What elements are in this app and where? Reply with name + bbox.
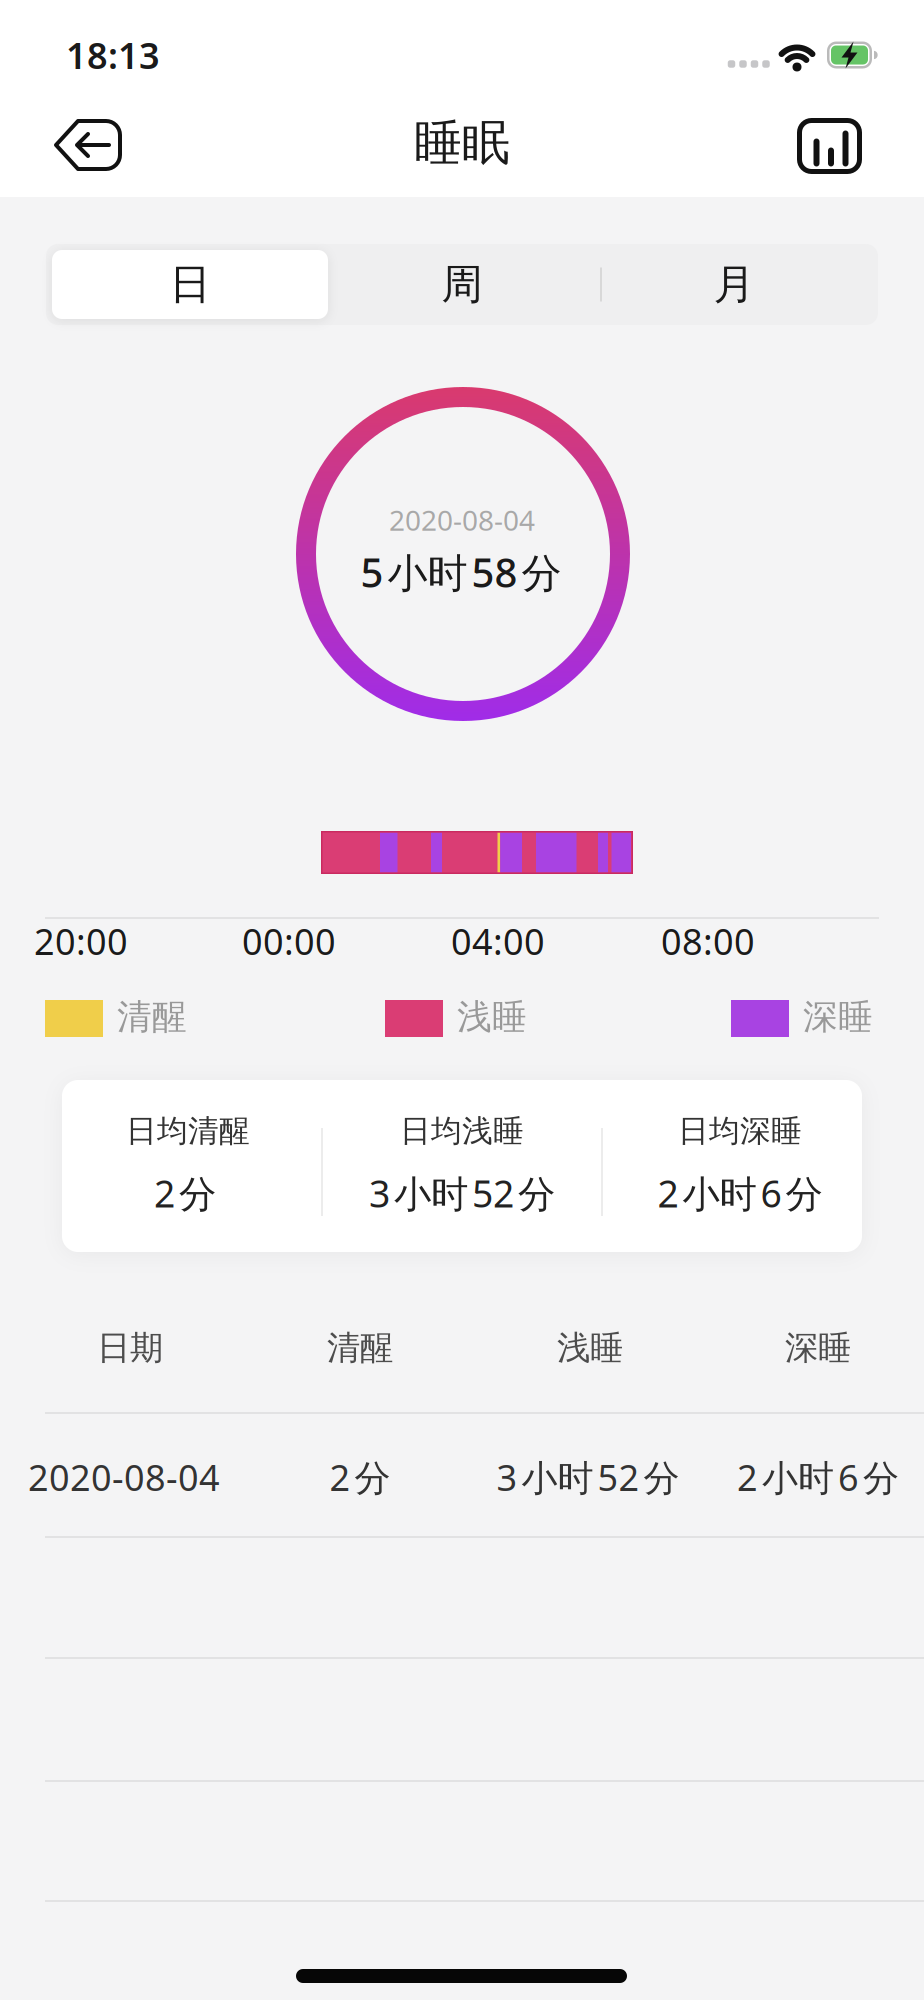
staticText: 2020-08-04 <box>28 1453 220 1501</box>
staticText: 清醒 <box>117 996 187 1038</box>
staticText: 3 小时 52 分 <box>496 1453 679 1501</box>
button[interactable]: 日 <box>52 248 328 321</box>
staticText: 2 小时 6 分 <box>657 1168 822 1218</box>
staticText: 日均清醒 <box>126 1112 250 1150</box>
staticText: 2020-08-04 <box>389 501 535 539</box>
staticText: 04:00 <box>451 917 545 965</box>
staticText: 00:00 <box>242 917 336 965</box>
staticText: 浅睡 <box>457 996 527 1038</box>
staticText: 月 <box>713 259 754 310</box>
staticText: 5 小时 58 分 <box>360 545 561 598</box>
button[interactable]: 周 <box>326 248 598 321</box>
staticText: 3 小时 52 分 <box>369 1168 555 1218</box>
staticText: 深睡 <box>803 996 873 1038</box>
staticText: 日期 <box>97 1327 163 1368</box>
staticText: 浅睡 <box>557 1327 623 1368</box>
staticText: 08:00 <box>661 917 755 965</box>
button[interactable]: 月 <box>598 248 870 321</box>
staticText: 睡眠 <box>414 113 510 172</box>
staticText: 20:00 <box>34 917 128 965</box>
staticText: 2 分 <box>329 1453 390 1501</box>
staticText: 日 <box>169 259 210 310</box>
staticText: 2 分 <box>154 1168 216 1218</box>
staticText: 2 小时 6 分 <box>737 1453 899 1501</box>
staticText: 18:13 <box>66 31 160 79</box>
staticText: 周 <box>441 259 482 310</box>
staticText: 深睡 <box>785 1327 851 1368</box>
button[interactable]: Statistics <box>797 118 862 174</box>
button[interactable]: Back <box>53 119 123 171</box>
staticText: 日均浅睡 <box>400 1112 524 1150</box>
staticText: 清醒 <box>327 1327 393 1368</box>
staticText: 日均深睡 <box>678 1112 802 1150</box>
